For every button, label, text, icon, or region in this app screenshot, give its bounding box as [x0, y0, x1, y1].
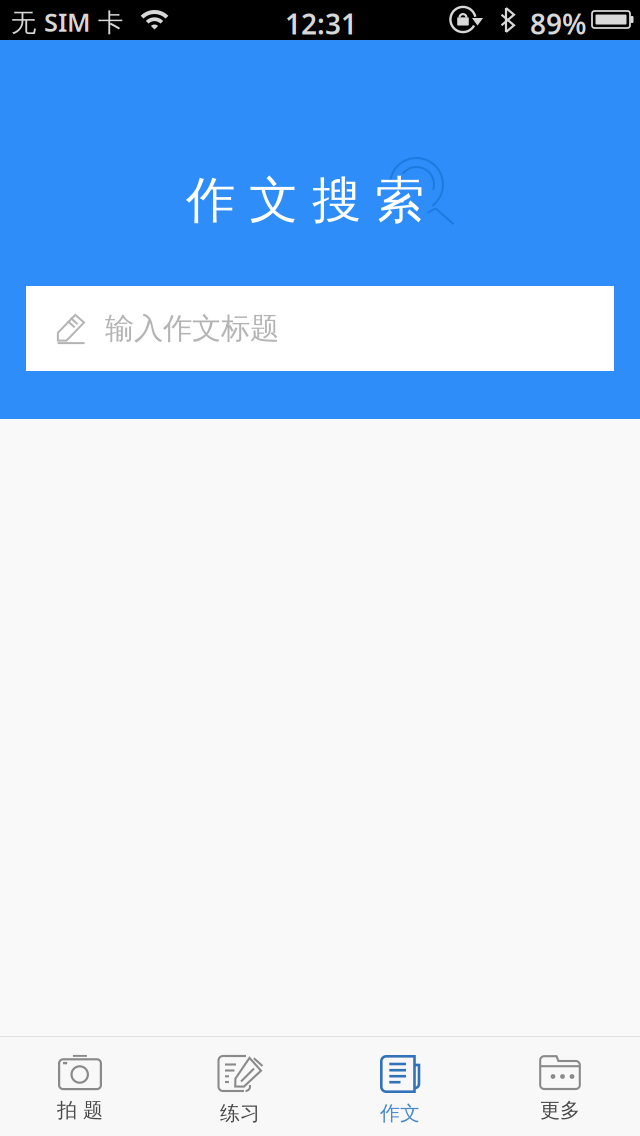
button[interactable]: 输入作文标题 [26, 286, 614, 371]
button[interactable]: 拍题 [0, 1037, 160, 1136]
staticText: 无 SIM 卡 [11, 5, 123, 39]
staticText: 89% [530, 5, 587, 42]
staticText: 拍题 [57, 1098, 103, 1123]
staticText: 更多 [540, 1098, 580, 1123]
staticText: 练习 [220, 1101, 260, 1126]
button[interactable]: 更多 [480, 1037, 640, 1136]
staticText: 作文 [380, 1101, 420, 1126]
staticText: 12:31 [285, 5, 357, 42]
button[interactable]: 作文 [320, 1037, 480, 1136]
staticText: 输入作文标题 [105, 310, 279, 346]
button[interactable]: 练习 [160, 1037, 320, 1136]
staticText: 作文搜索 [186, 170, 424, 231]
